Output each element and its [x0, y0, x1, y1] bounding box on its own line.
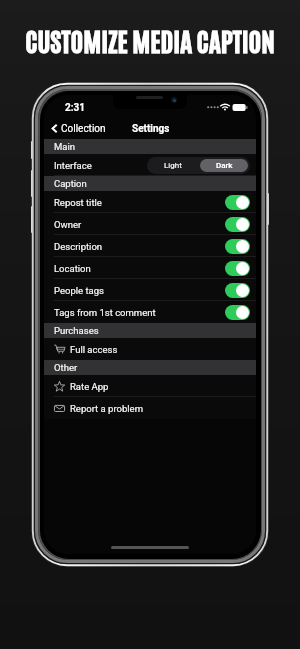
- button[interactable]: [44, 191, 256, 213]
- button[interactable]: [44, 257, 256, 279]
- button[interactable]: Dark: [200, 159, 248, 172]
- staticText: Purchases: [54, 325, 99, 336]
- button[interactable]: Light: [147, 157, 198, 174]
- staticText: People tags: [54, 285, 104, 296]
- staticText: Repost title: [54, 197, 102, 208]
- button[interactable]: Tags from 1st comment: [225, 305, 250, 320]
- staticText: Interface: [54, 160, 92, 171]
- staticText: Settings: [132, 123, 170, 135]
- button[interactable]: [44, 154, 256, 176]
- button[interactable]: People tags: [225, 283, 250, 298]
- button[interactable]: [44, 301, 256, 323]
- staticText: Other: [54, 362, 78, 373]
- button[interactable]: Owner: [225, 217, 250, 232]
- button[interactable]: [44, 235, 256, 257]
- staticText: Location: [54, 263, 91, 274]
- button[interactable]: Collection: [44, 118, 112, 139]
- button[interactable]: [44, 213, 256, 235]
- button[interactable]: Full access: [44, 338, 256, 360]
- staticText: Tags from 1st comment: [54, 307, 156, 318]
- button[interactable]: Repost title: [225, 195, 250, 210]
- button[interactable]: Location: [225, 261, 250, 276]
- button[interactable]: [44, 279, 256, 301]
- staticText: Report a problem: [70, 403, 143, 414]
- staticText: Caption: [54, 178, 87, 189]
- button[interactable]: Rate App: [44, 375, 256, 397]
- staticText: Collection: [61, 123, 106, 135]
- staticText: Light: [164, 161, 182, 170]
- staticText: Description: [54, 241, 103, 252]
- staticText: Full access: [70, 344, 118, 355]
- staticText: 2:31: [65, 102, 86, 114]
- staticText: Dark: [216, 161, 233, 170]
- button[interactable]: Description: [225, 239, 250, 254]
- staticText: Owner: [54, 219, 82, 230]
- staticText: CUSTOMIZE MEDIA CAPTION: [25, 23, 275, 57]
- button[interactable]: Report a problem: [44, 397, 256, 419]
- staticText: Rate App: [70, 381, 109, 392]
- staticText: Main: [54, 141, 76, 152]
